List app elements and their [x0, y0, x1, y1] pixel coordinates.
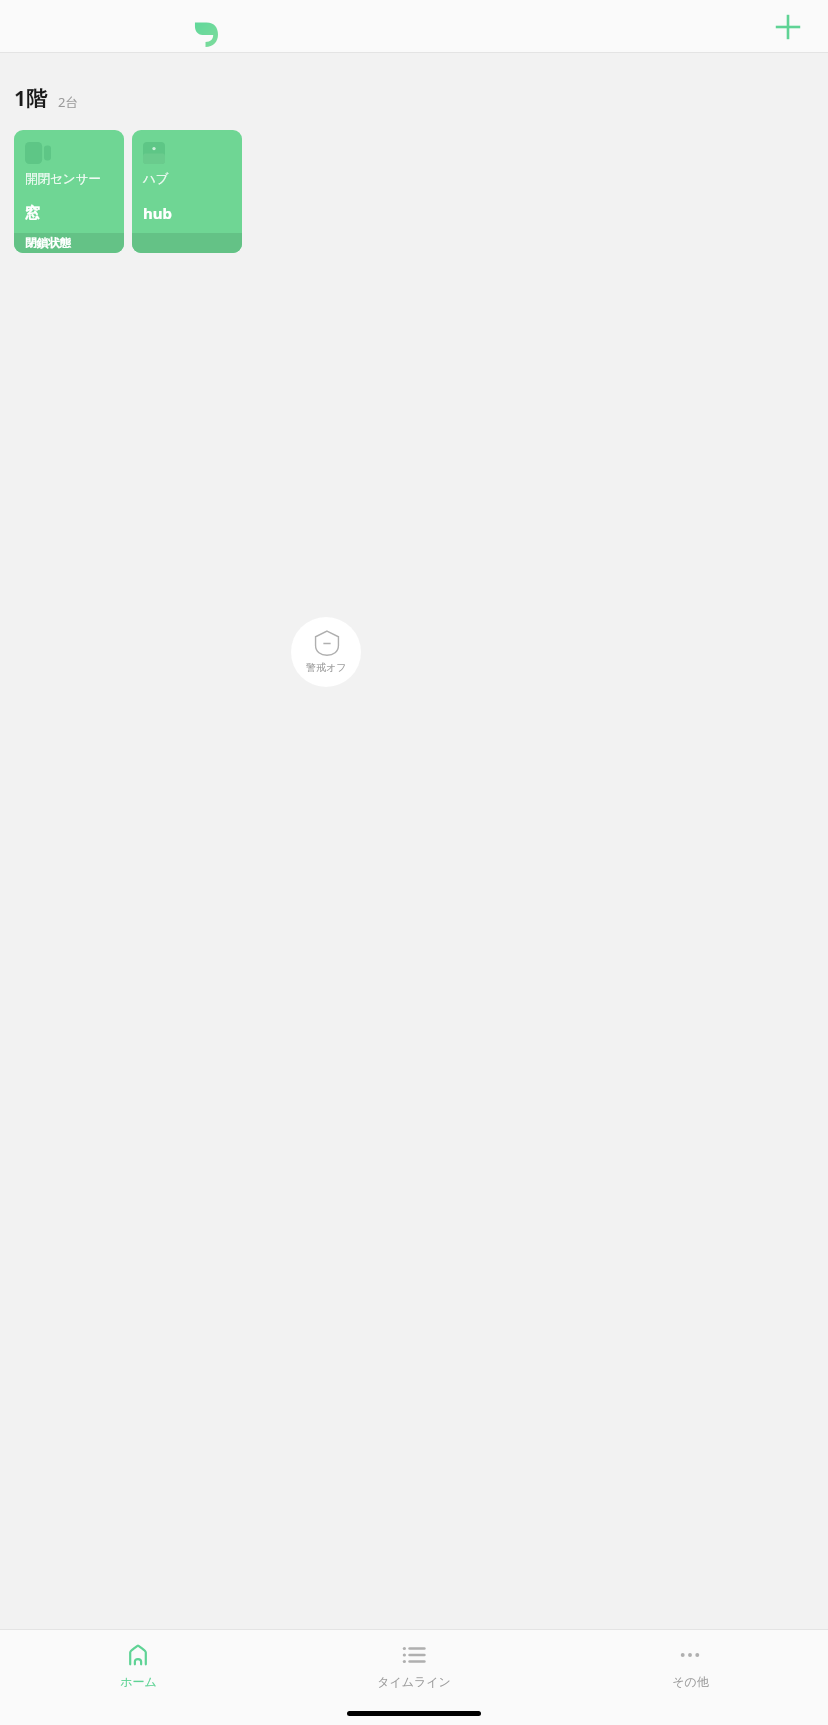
- button[interactable]: その他: [552, 1630, 828, 1689]
- staticText: ホーム: [120, 1674, 157, 1689]
- staticText: ハブ: [143, 171, 169, 187]
- button[interactable]: 警戒オフ: [291, 617, 361, 687]
- button[interactable]: 開閉センサー: [14, 130, 124, 253]
- staticText: 1階: [14, 84, 48, 113]
- button[interactable]: タイムライン: [276, 1630, 552, 1689]
- staticText: タイムライン: [377, 1674, 451, 1689]
- button[interactable]: 追加: [764, 3, 812, 51]
- staticText: 閉鎖状態: [25, 236, 71, 250]
- staticText: 開閉センサー: [25, 171, 101, 187]
- staticText: その他: [672, 1674, 709, 1689]
- staticText: hub: [143, 203, 172, 223]
- staticText: 警戒オフ: [306, 661, 347, 674]
- button[interactable]: ハブ: [132, 130, 242, 253]
- staticText: 2台: [58, 93, 79, 111]
- staticText: 窓: [25, 204, 40, 223]
- button[interactable]: ホーム: [0, 1630, 276, 1689]
